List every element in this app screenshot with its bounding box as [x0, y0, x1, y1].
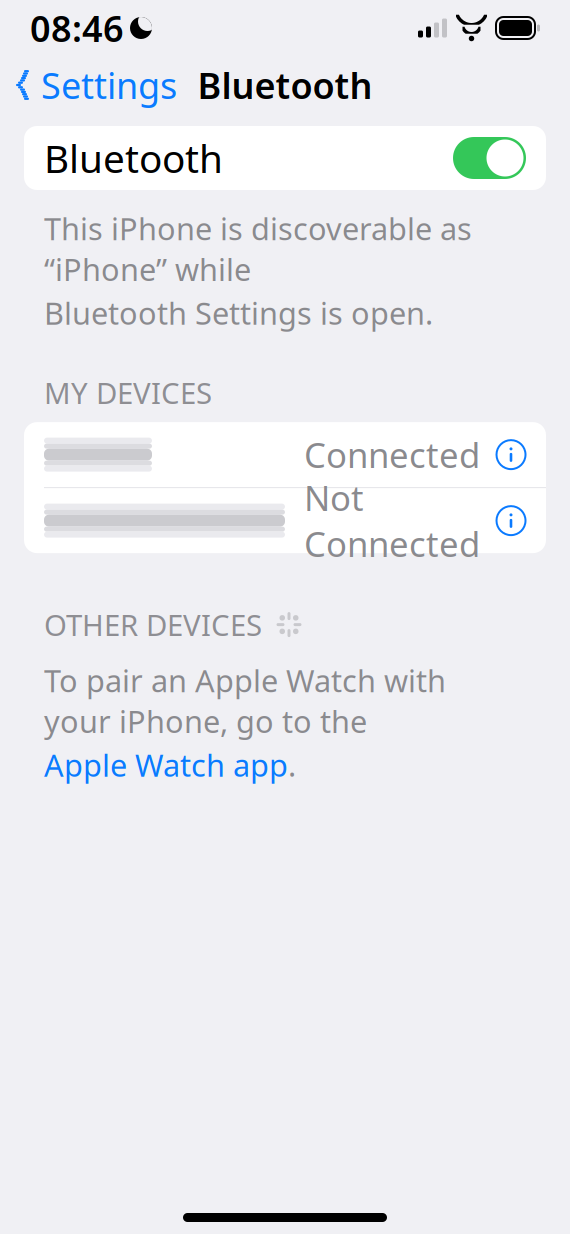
button[interactable]: Bluetooth On: [24, 126, 546, 190]
button[interactable]: More Info: [480, 432, 526, 478]
button[interactable]: Settings: [2, 53, 191, 117]
button[interactable]: Not Connected: [24, 488, 546, 553]
staticText: To pair an Apple Watch with your iPhone,…: [44, 660, 446, 741]
button[interactable]: More Info: [480, 498, 526, 544]
staticText: MY DEVICES: [44, 373, 212, 412]
staticText: OTHER DEVICES: [44, 605, 262, 644]
staticText: Apple Watch app: [44, 744, 288, 785]
staticText: Settings: [41, 61, 177, 109]
staticText: Not Connected: [304, 475, 480, 567]
staticText: Bluetooth: [44, 132, 223, 184]
staticText: .: [288, 744, 296, 785]
staticText: 08:46: [30, 4, 124, 52]
staticText: Bluetooth Settings is open.: [44, 292, 433, 333]
staticText: Connected: [304, 432, 480, 478]
staticText: This iPhone is discoverable as “iPhone” …: [44, 208, 472, 289]
button[interactable]: Apple Watch app: [44, 744, 296, 785]
staticText: Bluetooth: [197, 61, 372, 109]
button[interactable]: Connected: [24, 422, 546, 487]
